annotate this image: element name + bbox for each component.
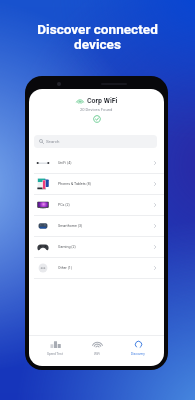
staticText: Speed Test: [47, 352, 63, 356]
staticText: Gaming (2): [58, 245, 76, 249]
staticText: Smarthome (3): [58, 224, 83, 228]
staticText: 20 Devices Found: [80, 107, 113, 112]
staticText: Discovery: [131, 352, 145, 356]
button[interactable]: Speed Test: [37, 336, 73, 359]
button[interactable]: Phones & Tablets (8): [29, 174, 164, 195]
staticText: Phones & Tablets (8): [58, 182, 92, 186]
button[interactable]: WiFi: [79, 336, 115, 359]
button[interactable]: Other (1): [29, 258, 164, 279]
staticText: WiFi: [94, 352, 101, 356]
button[interactable]: Discovery: [120, 336, 156, 359]
button[interactable]: Search: [34, 135, 157, 148]
staticText: Other (1): [58, 266, 73, 270]
button[interactable]: UniFi (4): [29, 153, 164, 174]
staticText: Discover connected devices: [0, 21, 195, 53]
button[interactable]: Smarthome (3): [29, 216, 164, 237]
staticText: Search: [46, 139, 60, 144]
button[interactable]: PCs (2): [29, 195, 164, 216]
staticText: UniFi (4): [58, 161, 72, 165]
staticText: Corp WiFi: [87, 97, 118, 105]
button[interactable]: Gaming (2): [29, 237, 164, 258]
staticText: PCs (2): [58, 203, 70, 207]
